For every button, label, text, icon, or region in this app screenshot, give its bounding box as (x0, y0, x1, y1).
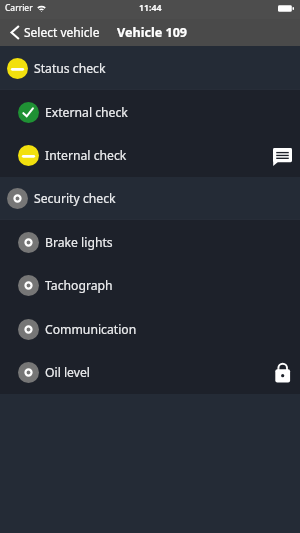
staticText: Carrier (5, 2, 33, 14)
staticText: External check (45, 104, 128, 121)
button[interactable]: Communication (0, 307, 300, 351)
button[interactable]: Select vehicle (0, 21, 106, 45)
staticText: 11:44 (139, 2, 162, 14)
staticText: Communication (45, 321, 137, 338)
button[interactable]: Tachograph (0, 264, 300, 307)
staticText: Internal check (45, 147, 127, 164)
staticText: Vehicle 109 (117, 24, 188, 41)
staticText: Tachograph (45, 277, 113, 294)
other: Comments (273, 145, 292, 167)
staticText: Select vehicle (24, 24, 100, 40)
button[interactable]: External check (0, 90, 300, 134)
other: Locked (275, 363, 292, 383)
button[interactable]: Brake lights (0, 220, 300, 264)
staticText: Security check (34, 190, 116, 207)
button[interactable]: Internal check (0, 134, 300, 177)
staticText: Brake lights (45, 234, 113, 251)
staticText: Status check (34, 60, 106, 77)
staticText: Oil level (45, 364, 90, 381)
button[interactable]: Oil level (0, 351, 300, 394)
button[interactable]: Status check (0, 46, 300, 90)
button[interactable]: Security check (0, 177, 300, 220)
